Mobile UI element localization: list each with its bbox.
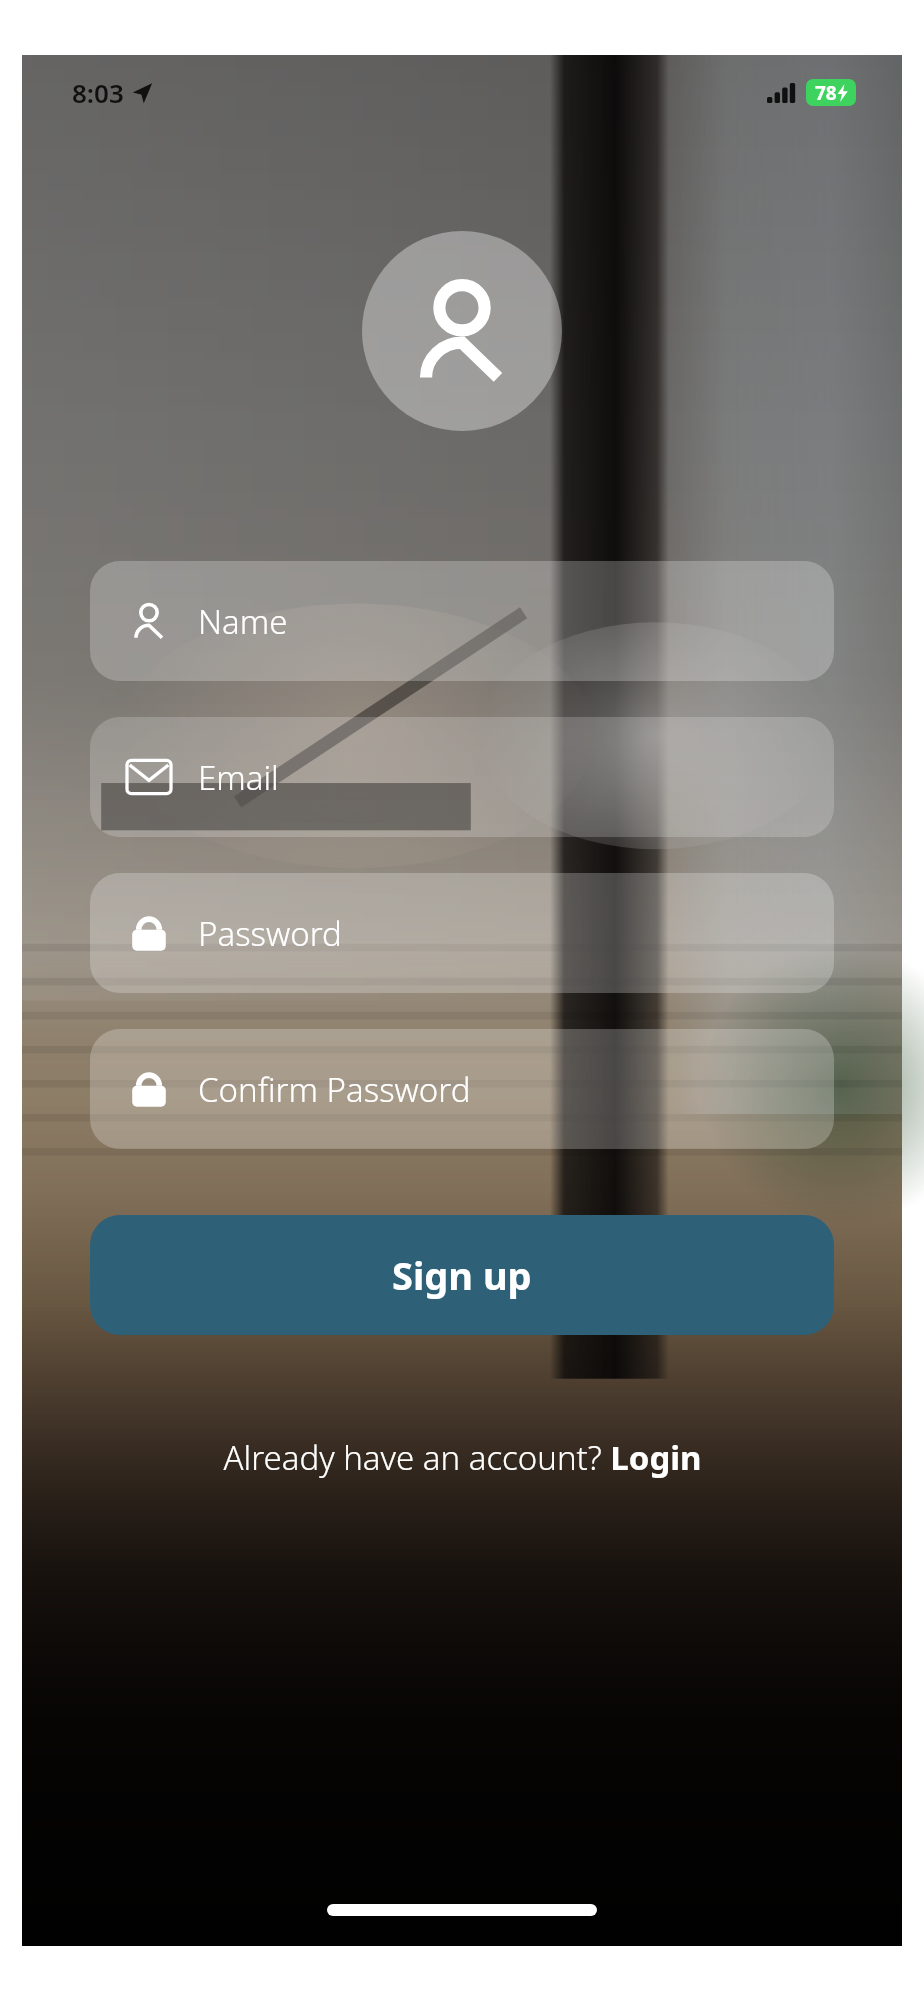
staticText: 78 xyxy=(815,80,837,106)
button[interactable]: Email xyxy=(90,717,834,837)
button[interactable]: Password xyxy=(90,873,834,993)
staticText: Name xyxy=(198,599,288,644)
staticText: Email xyxy=(198,755,279,800)
staticText: 8:03 xyxy=(72,75,124,110)
staticText: Confirm Password xyxy=(198,1067,471,1112)
button[interactable]: Confirm Password xyxy=(90,1029,834,1149)
button[interactable]: Already have an account? Login xyxy=(90,1435,834,1480)
staticText: Already have an account? Login xyxy=(223,1435,702,1480)
button[interactable]: Profile photo xyxy=(362,231,562,431)
button[interactable]: Sign up xyxy=(90,1215,834,1335)
staticText: Password xyxy=(198,911,342,956)
staticText: Sign up xyxy=(392,1249,532,1301)
button[interactable]: Name xyxy=(90,561,834,681)
